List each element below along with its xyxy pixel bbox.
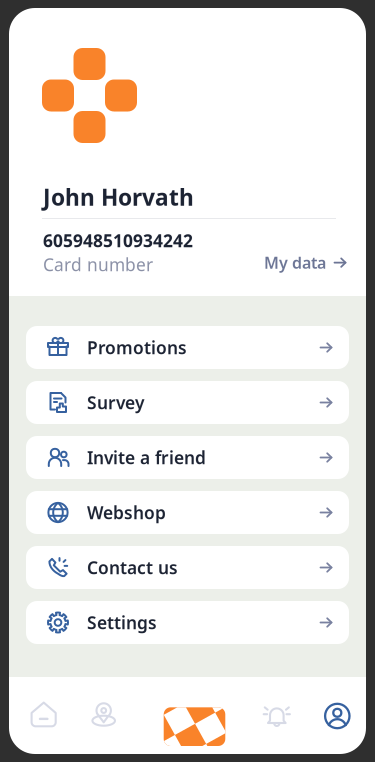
button[interactable]: Settings	[26, 601, 349, 644]
button[interactable]: Profile	[323, 702, 351, 730]
button[interactable]: Promotions	[26, 326, 349, 369]
staticText: Survey	[87, 391, 144, 414]
staticText: My data	[264, 252, 326, 273]
button[interactable]: My data	[264, 252, 347, 273]
staticText: Promotions	[87, 336, 187, 359]
staticText: Invite a friend	[87, 446, 206, 469]
button[interactable]: Home	[30, 701, 58, 729]
staticText: 605948510934242	[43, 229, 193, 252]
staticText: John Horvath	[43, 182, 194, 212]
button[interactable]: Survey	[26, 381, 349, 424]
staticText: Settings	[87, 611, 157, 634]
button[interactable]: Contact us	[26, 546, 349, 589]
button[interactable]: Notifications	[263, 702, 291, 730]
button[interactable]: Webshop	[26, 491, 349, 534]
staticText: Card number	[43, 253, 153, 276]
button[interactable]: Locations	[90, 700, 118, 728]
button[interactable]: Card	[164, 707, 225, 746]
staticText: Contact us	[87, 556, 178, 579]
button[interactable]: Invite a friend	[26, 436, 349, 479]
staticText: Webshop	[87, 501, 166, 524]
